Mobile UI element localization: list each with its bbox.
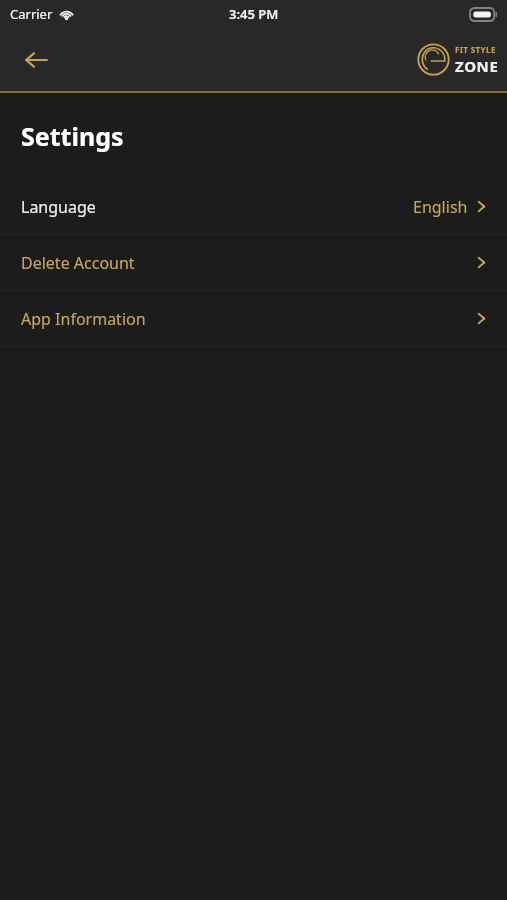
staticText: Carrier bbox=[10, 5, 53, 23]
button[interactable]: Delete Account bbox=[0, 235, 507, 290]
staticText: Delete Account bbox=[21, 252, 135, 274]
staticText: English bbox=[413, 196, 468, 218]
staticText: App Information bbox=[21, 308, 146, 330]
button[interactable]: Back bbox=[12, 36, 60, 84]
staticText: Language bbox=[21, 196, 96, 218]
staticText: ZONE bbox=[455, 56, 499, 76]
staticText: 3:45 PM bbox=[229, 5, 279, 23]
staticText: Settings bbox=[21, 119, 124, 153]
button[interactable]: App Information bbox=[0, 291, 507, 346]
staticText: FIT STYLE bbox=[455, 44, 496, 55]
button[interactable]: Language bbox=[0, 179, 507, 234]
